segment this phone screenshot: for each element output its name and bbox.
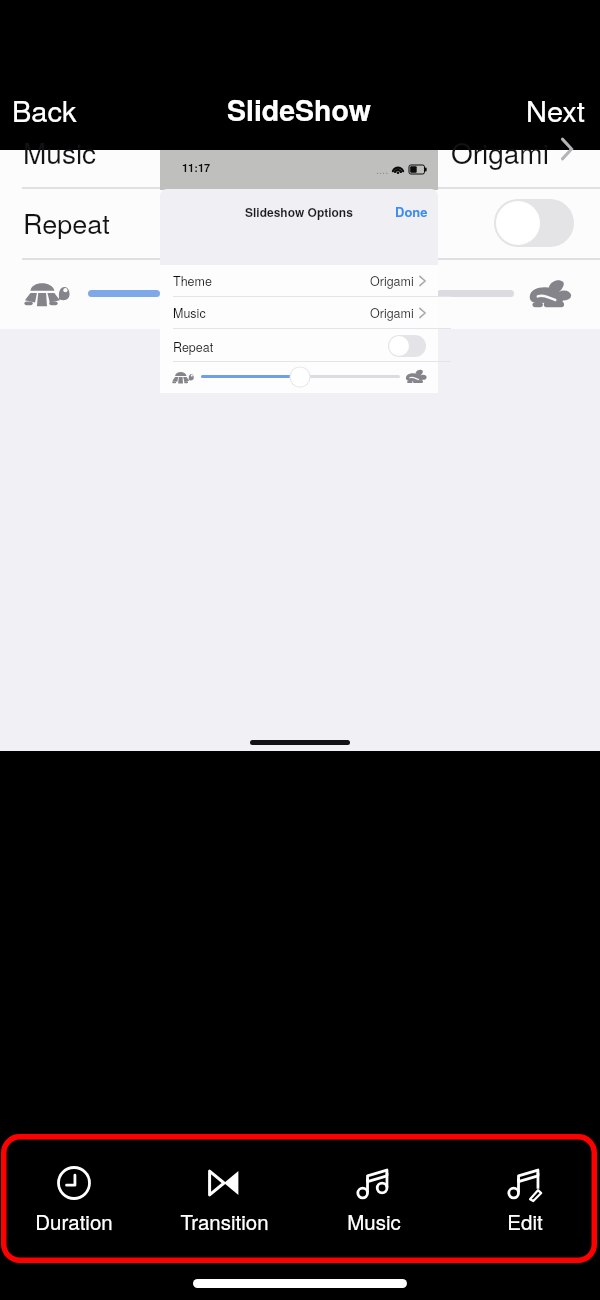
staticText: Music (23, 132, 97, 172)
staticText: Next (526, 89, 585, 131)
staticText: Duration (35, 1206, 113, 1235)
staticText: 11:17 (182, 160, 211, 176)
button[interactable]: Transition (164, 1158, 284, 1242)
staticText: Repeat (23, 203, 110, 242)
button[interactable]: Repeat (388, 335, 426, 357)
staticText: Edit (507, 1206, 543, 1235)
staticText: Origami (451, 132, 549, 172)
staticText: Music (347, 1206, 401, 1235)
staticText: Theme (173, 272, 212, 290)
button[interactable]: Duration (14, 1158, 134, 1242)
staticText: Origami (370, 304, 414, 322)
staticText: SlideShow (227, 89, 371, 130)
button[interactable]: Theme (160, 265, 438, 297)
staticText: .... (376, 161, 389, 177)
button[interactable]: Repeat toggle (494, 199, 574, 247)
staticText: Back (12, 89, 77, 131)
staticText: Repeat (173, 338, 214, 356)
staticText: Done (395, 202, 428, 221)
button[interactable]: Next (517, 84, 594, 136)
staticText: Transition (180, 1206, 269, 1235)
button[interactable]: Music (314, 1158, 434, 1242)
button[interactable]: Edit (465, 1158, 585, 1242)
button[interactable]: Done (391, 200, 432, 223)
staticText: Slideshow Options (245, 203, 353, 220)
button[interactable]: Back (3, 84, 86, 136)
button[interactable]: Music (160, 297, 438, 329)
staticText: Music (173, 304, 206, 322)
staticText: Origami (370, 272, 414, 290)
